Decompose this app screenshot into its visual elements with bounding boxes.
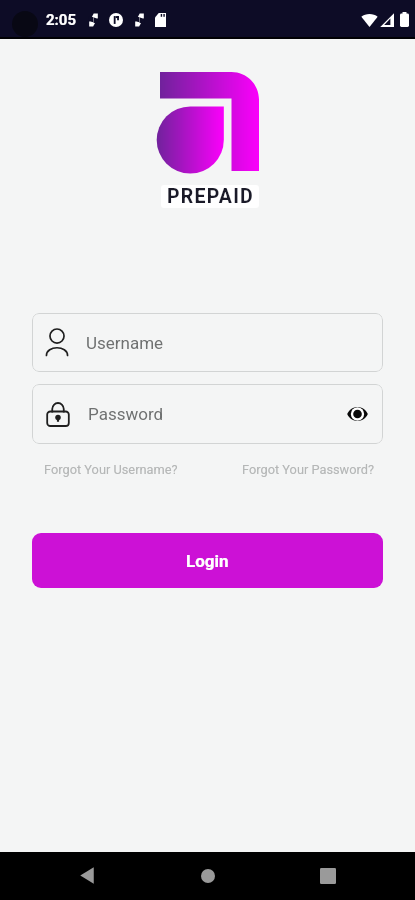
button[interactable]: Show password (344, 401, 370, 427)
button[interactable]: Username (32, 313, 383, 372)
staticText: 2:05 (46, 11, 77, 29)
button[interactable]: Home (185, 853, 230, 898)
staticText: PREPAID (167, 185, 254, 208)
button[interactable]: Password (32, 384, 383, 444)
button[interactable]: Forgot Your Password? (242, 462, 375, 477)
staticText: Username (86, 333, 164, 353)
staticText: Password (88, 404, 164, 424)
staticText: Forgot Your Username? (44, 462, 178, 477)
button[interactable]: Login (32, 533, 383, 588)
staticText: Login (186, 551, 229, 571)
button[interactable]: Forgot Your Username? (44, 462, 178, 477)
button[interactable]: Back (64, 853, 109, 898)
staticText: Forgot Your Password? (242, 462, 375, 477)
button[interactable]: Recent apps (305, 853, 350, 898)
